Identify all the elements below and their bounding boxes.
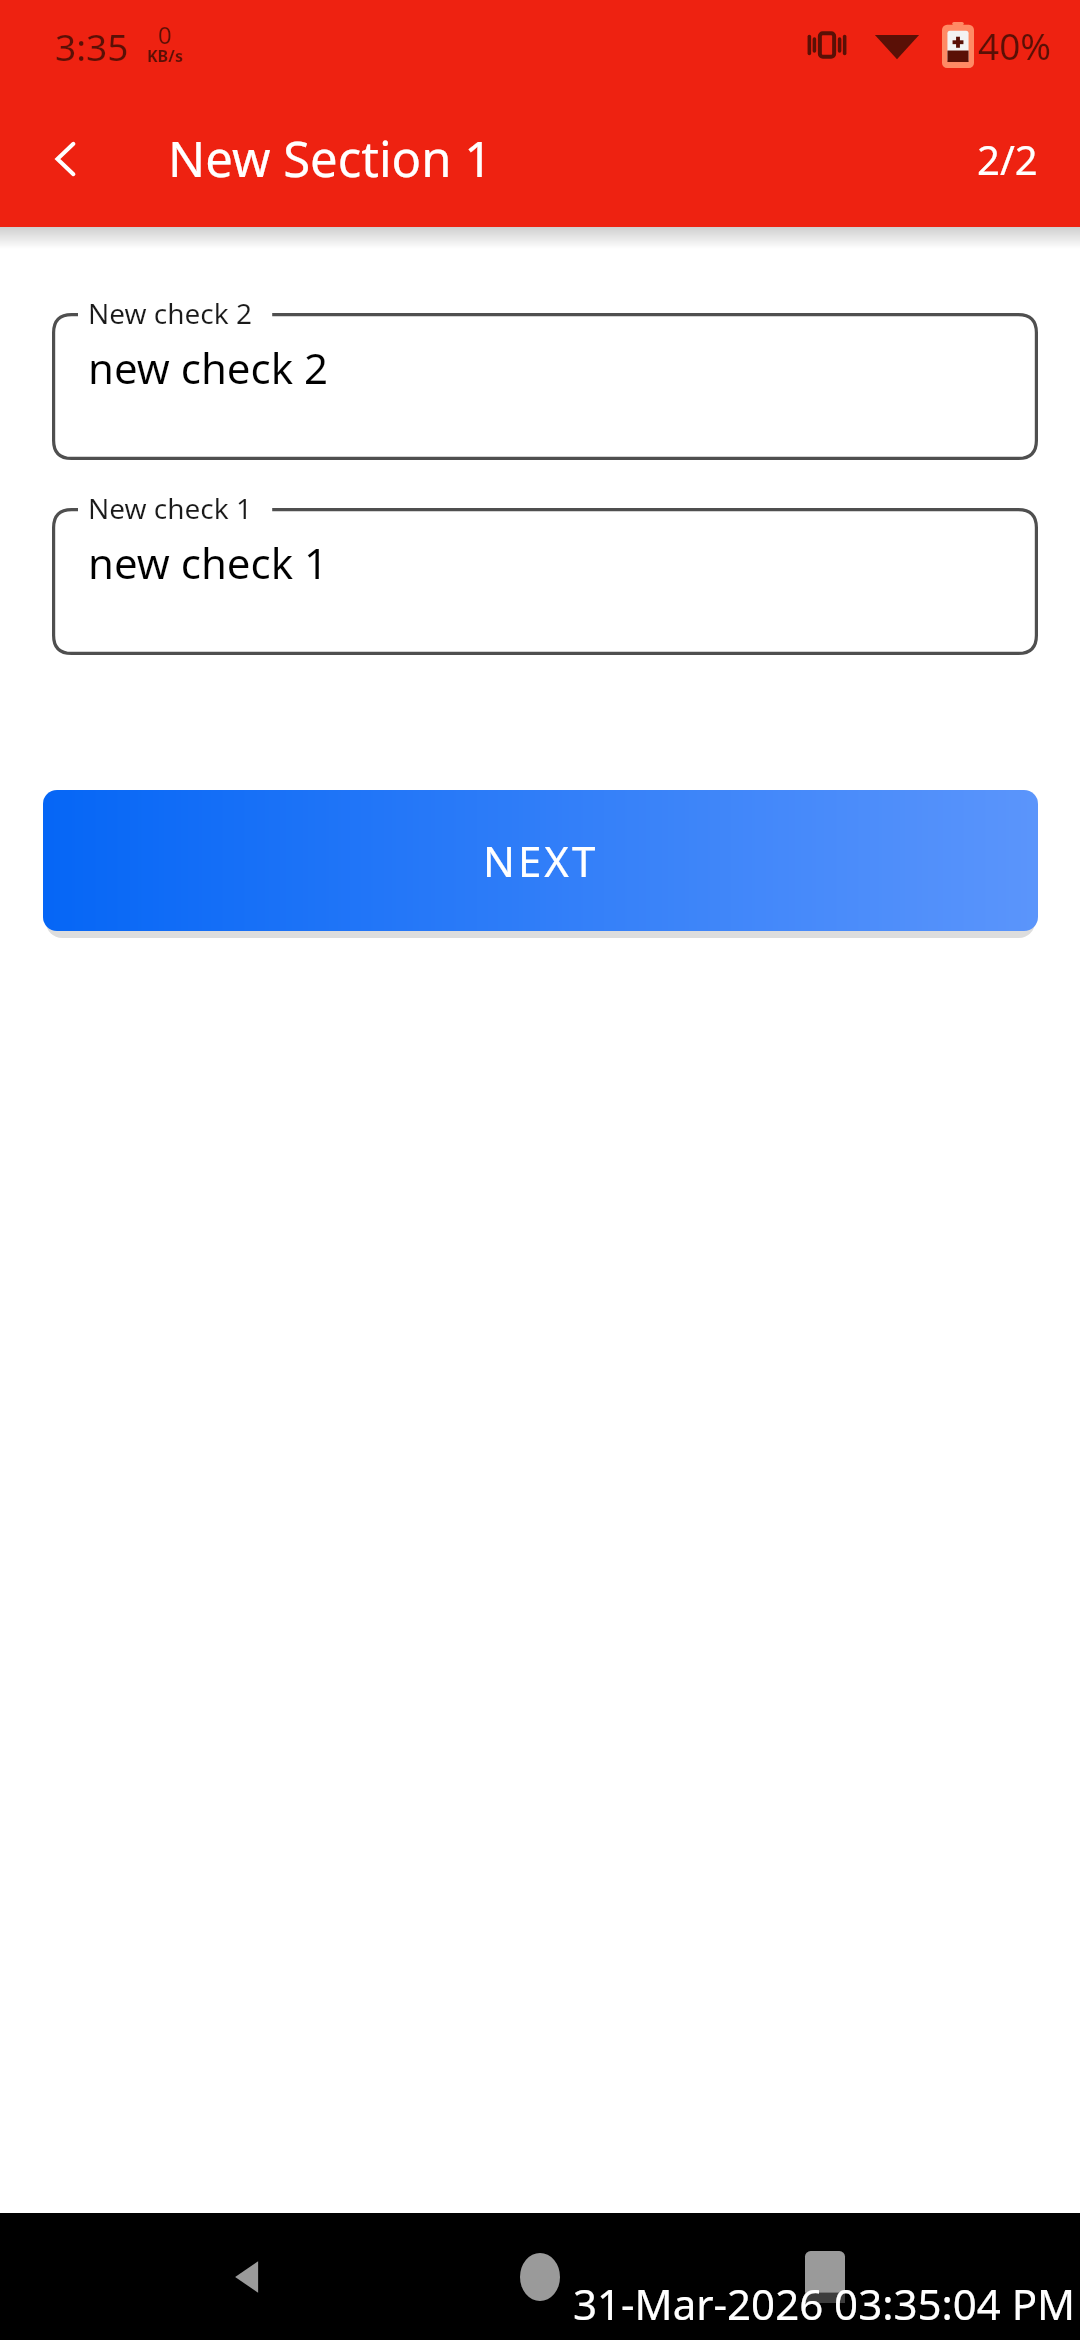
button[interactable]: Back [203,2232,293,2322]
button[interactable]: New check 2 [52,313,1038,460]
staticText: NEXT [483,832,599,889]
button[interactable]: Back [22,114,112,204]
staticText: 40% [978,20,1052,70]
staticText: New check 1 [88,489,253,527]
staticText: New Section 1 [168,125,493,192]
staticText: 2/2 [977,132,1038,186]
staticText: New check 2 [88,294,253,332]
button[interactable]: New check 1 [52,508,1038,655]
button[interactable]: NEXT [43,790,1038,931]
staticText: new check 1 [88,534,329,591]
button[interactable]: Recents [780,2232,870,2322]
button[interactable]: Home [495,2232,585,2322]
staticText: new check 2 [88,339,329,396]
staticText: 3:35 [55,21,129,71]
staticText: 31-Mar-2026 03:35:04 PM [573,2275,1076,2332]
staticText: KB/s [147,45,183,67]
staticText: 0 [158,18,172,51]
